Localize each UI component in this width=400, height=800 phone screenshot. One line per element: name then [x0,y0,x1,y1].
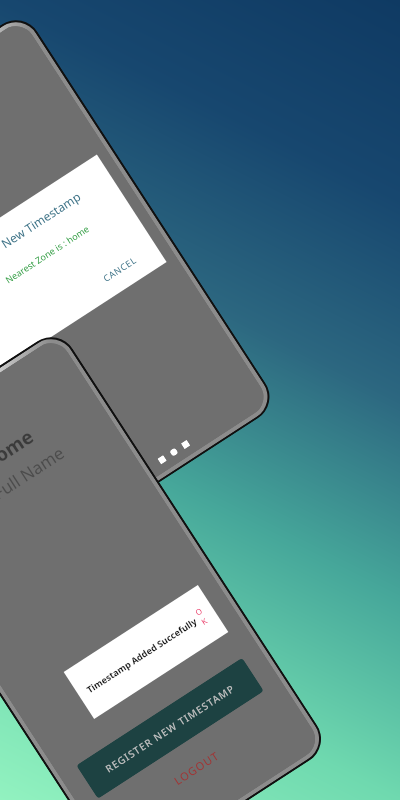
staticText: Register New Timestamp [0,188,84,278]
button[interactable]: Recents [181,440,190,449]
button[interactable]: Timestamp Added Succefully [64,585,228,719]
button[interactable]: LOGOUT [154,734,238,800]
button[interactable]: REGISTER NEW TIMESTAMP [76,658,264,799]
button[interactable]: OK [187,601,213,632]
staticText: Welcome [0,423,39,493]
staticText: Your Full Name [0,441,69,527]
staticText: LOGOUT [171,748,222,788]
staticText: Timestamp Added Succefully [84,615,199,695]
staticText: REGISTER NEW TIMESTAMP [102,681,238,775]
button[interactable]: Back [157,455,167,465]
staticText: OK [193,607,207,627]
button[interactable]: Home [169,447,179,457]
staticText: CANCEL [100,253,139,284]
button[interactable]: CANCEL [90,244,149,293]
staticText: Nearest Zone is : home [0,204,119,303]
